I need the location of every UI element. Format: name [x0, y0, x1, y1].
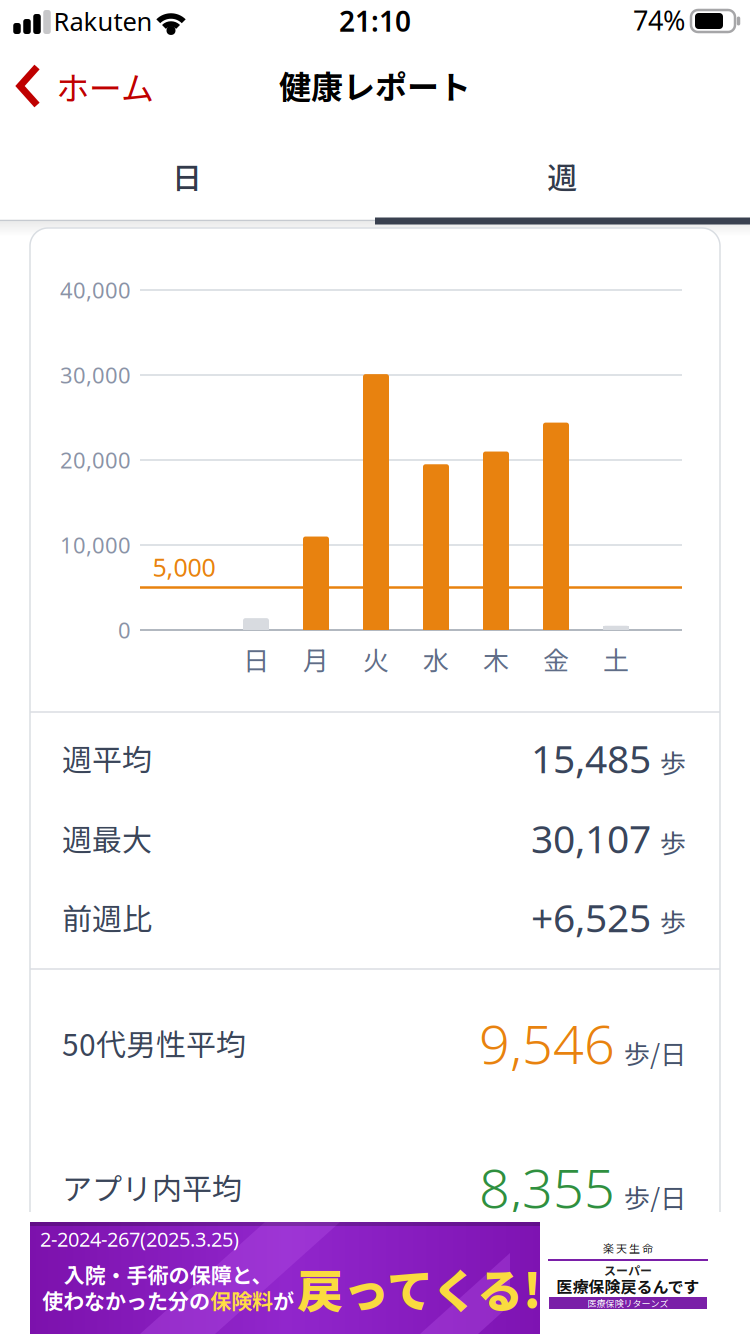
staticText: ホーム: [56, 62, 154, 110]
staticText: 8,355: [479, 1150, 615, 1224]
staticText: 日: [172, 154, 202, 198]
staticText: 週平均: [62, 736, 152, 780]
staticText: 木: [483, 640, 509, 678]
staticText: 保険料: [210, 1285, 273, 1315]
staticText: 日: [243, 640, 269, 678]
staticText: が: [273, 1285, 294, 1315]
staticText: 40,000: [60, 275, 131, 305]
staticText: 週最大: [62, 816, 152, 860]
staticText: 土: [603, 640, 629, 678]
staticText: 水: [423, 640, 449, 678]
staticText: 30,107: [531, 811, 651, 864]
staticText: 月: [303, 640, 329, 678]
staticText: 5,000: [152, 550, 215, 584]
staticText: 74%: [633, 2, 685, 38]
staticText: 2-2024-267(2025.3.25): [40, 1225, 239, 1253]
staticText: 歩/日: [624, 1034, 686, 1071]
staticText: 30,000: [60, 360, 131, 390]
staticText: 歩: [660, 823, 686, 861]
staticText: 前週比: [62, 895, 152, 939]
staticText: 歩: [660, 902, 686, 940]
staticText: 10,000: [60, 530, 131, 560]
staticText: 楽 天 生 命: [603, 1240, 653, 1256]
staticText: 0: [118, 615, 131, 645]
staticText: 歩/日: [624, 1178, 686, 1215]
staticText: 歩: [660, 743, 686, 781]
staticText: 戻ってくる!: [297, 1255, 541, 1321]
staticText: アプリ内平均: [62, 1165, 242, 1209]
staticText: 15,485: [531, 731, 651, 784]
staticText: 医療保険リターンズ: [587, 1296, 668, 1309]
staticText: 50代男性平均: [62, 1021, 246, 1065]
staticText: 金: [543, 640, 569, 678]
staticText: スーパー: [604, 1261, 652, 1279]
staticText: 火: [363, 640, 389, 678]
staticText: Rakuten: [53, 4, 152, 38]
staticText: 医療保険戻るんです: [556, 1274, 699, 1298]
staticText: 21:10: [339, 2, 411, 40]
staticText: 9,546: [479, 1006, 615, 1080]
staticText: +6,525: [531, 890, 651, 943]
staticText: 週: [547, 154, 577, 198]
staticText: 使わなかった分の: [42, 1285, 210, 1315]
staticText: 20,000: [60, 445, 131, 475]
staticText: 健康レポート: [279, 62, 471, 108]
staticText: 入院・手術の保障と、: [63, 1259, 272, 1289]
